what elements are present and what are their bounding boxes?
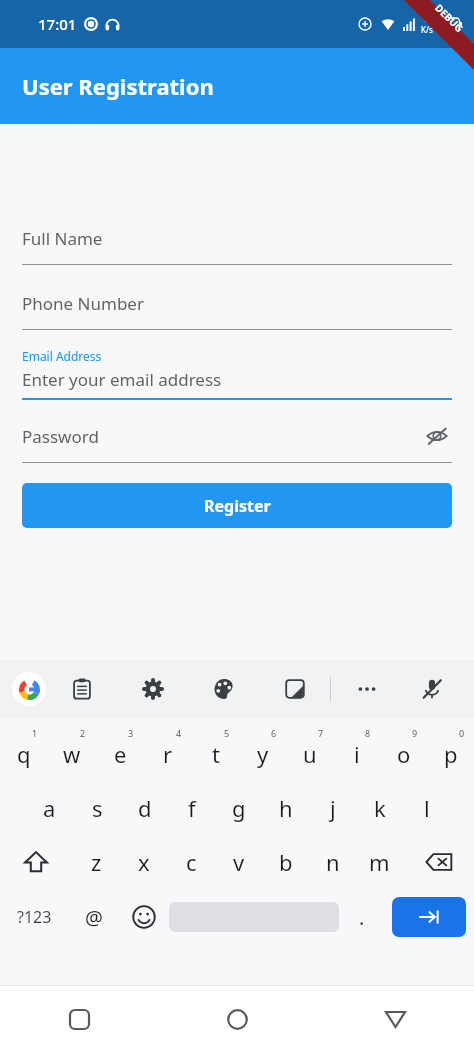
button[interactable]: More options — [331, 667, 402, 711]
staticText: e — [114, 739, 127, 769]
staticText: x — [138, 847, 150, 877]
button[interactable]: l — [403, 782, 450, 834]
button[interactable]: 6 — [239, 722, 286, 778]
button[interactable]: h — [262, 782, 309, 834]
button[interactable]: @ — [69, 890, 119, 944]
staticText: w — [63, 739, 81, 769]
button[interactable]: Space — [169, 890, 339, 944]
button[interactable]: Next — [392, 897, 466, 937]
button[interactable]: Backspace — [403, 836, 474, 888]
button[interactable]: k — [356, 782, 403, 834]
button[interactable]: Settings — [117, 667, 188, 711]
button[interactable]: m — [356, 836, 403, 888]
button[interactable]: Email Address — [22, 348, 452, 400]
staticText: 3 — [128, 727, 134, 739]
staticText: g — [232, 793, 246, 823]
button[interactable]: f — [168, 782, 215, 834]
staticText: User Registration — [22, 71, 214, 101]
staticText: j — [330, 793, 336, 823]
button[interactable]: Register — [22, 483, 452, 528]
button[interactable]: n — [309, 836, 356, 888]
staticText: Phone Number — [22, 292, 144, 315]
staticText: a — [43, 793, 56, 823]
button[interactable]: x — [120, 836, 168, 888]
staticText: l — [424, 793, 430, 823]
button[interactable]: Google — [12, 672, 46, 706]
staticText: r — [163, 739, 173, 769]
staticText: 5 — [224, 727, 230, 739]
button[interactable]: b — [262, 836, 309, 888]
button[interactable]: Emoji — [119, 890, 169, 944]
button[interactable]: d — [121, 782, 168, 834]
button[interactable]: Recents — [0, 986, 158, 1053]
button[interactable]: g — [215, 782, 262, 834]
staticText: Full Name — [22, 227, 103, 250]
staticText: y — [257, 739, 269, 769]
staticText: 9 — [412, 727, 418, 739]
staticText: s — [92, 793, 103, 823]
button[interactable]: v — [215, 836, 262, 888]
button[interactable]: Clipboard — [46, 667, 117, 711]
button[interactable]: Home — [158, 986, 316, 1053]
staticText: d — [138, 793, 152, 823]
staticText: . — [359, 904, 365, 931]
button[interactable]: Password — [22, 418, 452, 463]
button[interactable]: Phone Number — [22, 285, 452, 330]
button[interactable]: 8 — [333, 722, 380, 778]
staticText: f — [188, 793, 196, 823]
button[interactable]: Voice input off — [402, 667, 462, 711]
staticText: p — [444, 739, 458, 769]
button[interactable]: 2 — [48, 722, 96, 778]
staticText: o — [397, 739, 411, 769]
button[interactable]: Back — [316, 986, 474, 1053]
staticText: m — [369, 847, 390, 877]
button[interactable]: 9 — [380, 722, 427, 778]
staticText: Email Address — [22, 348, 102, 364]
staticText: Register — [204, 495, 271, 517]
button[interactable]: s — [73, 782, 121, 834]
staticText: n — [326, 847, 340, 877]
staticText: i — [354, 739, 360, 769]
staticText: c — [186, 847, 197, 877]
staticText: 6 — [271, 727, 277, 739]
staticText: 8 — [365, 727, 371, 739]
button[interactable]: 5 — [192, 722, 239, 778]
staticText: 4 — [176, 727, 182, 739]
staticText: h — [279, 793, 293, 823]
button[interactable]: 3 — [96, 722, 144, 778]
staticText: 7 — [318, 727, 324, 739]
button[interactable]: Themes — [188, 667, 259, 711]
button[interactable]: Toggle password visibility — [422, 421, 452, 451]
staticText: z — [91, 847, 102, 877]
staticText: @ — [85, 904, 103, 931]
staticText: Password — [22, 425, 422, 448]
button[interactable]: a — [25, 782, 73, 834]
button[interactable]: . — [339, 890, 384, 944]
staticText: Enter your email address — [22, 368, 222, 391]
staticText: 0 — [459, 727, 465, 739]
button[interactable]: Full Name — [22, 220, 452, 265]
staticText: b — [279, 847, 293, 877]
staticText: 2 — [425, 13, 430, 24]
staticText: K/s — [421, 24, 433, 35]
staticText: v — [233, 847, 245, 877]
staticText: t — [212, 739, 220, 769]
staticText: 1 — [32, 727, 38, 739]
staticText: q — [17, 739, 31, 769]
staticText: k — [374, 793, 386, 823]
button[interactable]: 0 — [427, 722, 474, 778]
button[interactable]: Resize keyboard — [259, 667, 330, 711]
button[interactable]: z — [72, 836, 120, 888]
button[interactable]: Shift — [0, 836, 72, 888]
button[interactable]: ?123 — [0, 890, 69, 944]
staticText: u — [303, 739, 317, 769]
button[interactable]: 7 — [286, 722, 333, 778]
button[interactable]: c — [168, 836, 215, 888]
button[interactable]: 1 — [0, 722, 48, 778]
staticText: DEBUG — [432, 1, 467, 35]
staticText: ?123 — [17, 906, 52, 928]
staticText: 2 — [80, 727, 86, 739]
button[interactable]: j — [309, 782, 356, 834]
staticText: 17:01 — [38, 14, 77, 34]
button[interactable]: 4 — [144, 722, 192, 778]
